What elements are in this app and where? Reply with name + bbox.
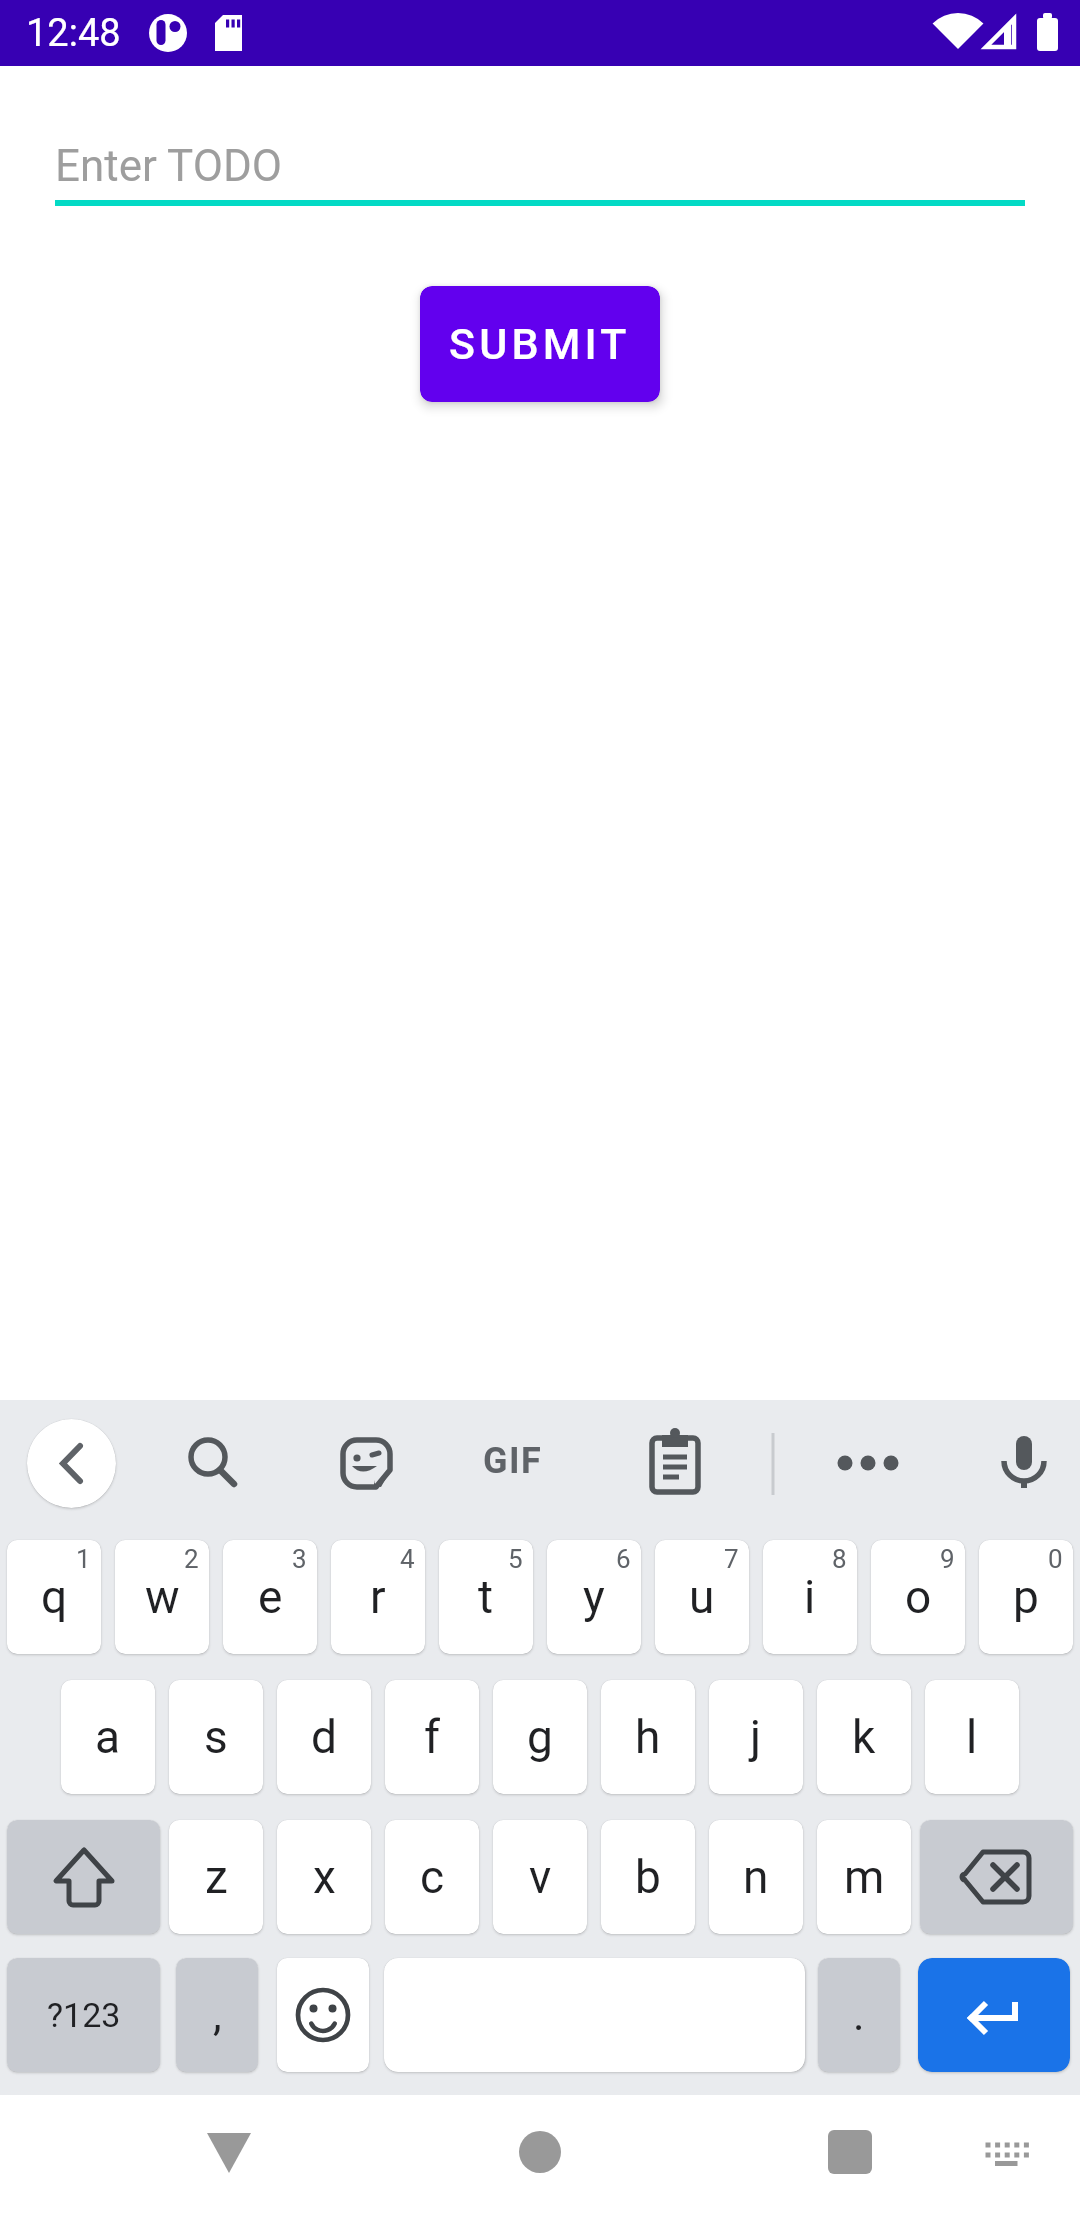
staticText: 12:48	[26, 11, 121, 56]
staticText: p	[1013, 1570, 1039, 1624]
staticText: w	[145, 1570, 180, 1624]
staticText: i	[804, 1570, 816, 1624]
staticText: Enter TODO	[55, 140, 283, 192]
button[interactable]: t	[439, 1540, 533, 1654]
button[interactable]: o	[871, 1540, 965, 1654]
button[interactable]: n	[709, 1820, 803, 1934]
button[interactable]	[920, 1820, 1073, 1934]
staticText: e	[258, 1570, 283, 1624]
button[interactable]: q	[7, 1540, 101, 1654]
staticText: s	[204, 1710, 228, 1764]
staticText: n	[743, 1850, 769, 1904]
button[interactable]	[490, 2123, 590, 2220]
staticText: 0	[1048, 1544, 1063, 1574]
staticText: SUBMIT	[449, 319, 631, 369]
staticText: j	[750, 1710, 762, 1764]
button[interactable]	[7, 1820, 160, 1934]
button[interactable]	[277, 1958, 369, 2072]
staticText: o	[905, 1570, 932, 1624]
button[interactable]: y	[547, 1540, 641, 1654]
button[interactable]: e	[223, 1540, 317, 1654]
button[interactable]: v	[493, 1820, 587, 1934]
button[interactable]: c	[385, 1820, 479, 1934]
staticText: v	[529, 1850, 552, 1904]
staticText: l	[966, 1710, 978, 1764]
staticText: GIF	[483, 1440, 543, 1482]
button[interactable]	[918, 1958, 1070, 2072]
staticText: x	[313, 1850, 336, 1904]
button[interactable]: k	[817, 1680, 911, 1794]
staticText: c	[420, 1850, 445, 1904]
button[interactable]: d	[277, 1680, 371, 1794]
staticText: m	[844, 1850, 885, 1904]
staticText: 4	[400, 1544, 415, 1574]
staticText: z	[205, 1850, 228, 1904]
button[interactable]: ,	[176, 1958, 258, 2072]
button[interactable]: r	[331, 1540, 425, 1654]
staticText: b	[635, 1850, 661, 1904]
button[interactable]: h	[601, 1680, 695, 1794]
button[interactable]: i	[763, 1540, 857, 1654]
button[interactable]: z	[169, 1820, 263, 1934]
button[interactable]: a	[61, 1680, 155, 1794]
button[interactable]: .	[818, 1958, 900, 2072]
staticText: 6	[616, 1544, 631, 1574]
button[interactable]: m	[817, 1820, 911, 1934]
button[interactable]: s	[169, 1680, 263, 1794]
button[interactable]	[27, 1419, 116, 1508]
button[interactable]: ?123	[7, 1958, 160, 2072]
staticText: 7	[724, 1544, 739, 1574]
staticText: f	[424, 1710, 440, 1764]
button[interactable]: f	[385, 1680, 479, 1794]
button[interactable]	[180, 2123, 280, 2220]
button[interactable]: j	[709, 1680, 803, 1794]
staticText: g	[527, 1710, 553, 1764]
staticText: .	[853, 1989, 865, 2041]
button[interactable]: w	[115, 1540, 209, 1654]
staticText: h	[635, 1710, 661, 1764]
staticText: 5	[508, 1544, 523, 1574]
staticText: a	[95, 1710, 121, 1764]
staticText: d	[311, 1710, 337, 1764]
button[interactable]: l	[925, 1680, 1019, 1794]
button[interactable]: p	[979, 1540, 1073, 1654]
staticText: k	[852, 1710, 876, 1764]
staticText: 8	[832, 1544, 847, 1574]
button[interactable]: x	[277, 1820, 371, 1934]
button[interactable]: b	[601, 1820, 695, 1934]
staticText: 1	[76, 1544, 91, 1574]
button[interactable]	[800, 2123, 900, 2220]
staticText: u	[689, 1570, 715, 1624]
staticText: 2	[184, 1544, 199, 1574]
button[interactable]: u	[655, 1540, 749, 1654]
staticText: t	[478, 1570, 494, 1624]
staticText: ,	[213, 1989, 222, 2041]
staticText: 9	[940, 1544, 955, 1574]
staticText: 3	[292, 1544, 307, 1574]
staticText: y	[583, 1570, 605, 1624]
button[interactable]: g	[493, 1680, 587, 1794]
staticText: q	[41, 1570, 68, 1624]
staticText: ?123	[47, 1995, 121, 2035]
button[interactable]: SUBMIT	[420, 286, 660, 402]
staticText: r	[370, 1570, 386, 1624]
